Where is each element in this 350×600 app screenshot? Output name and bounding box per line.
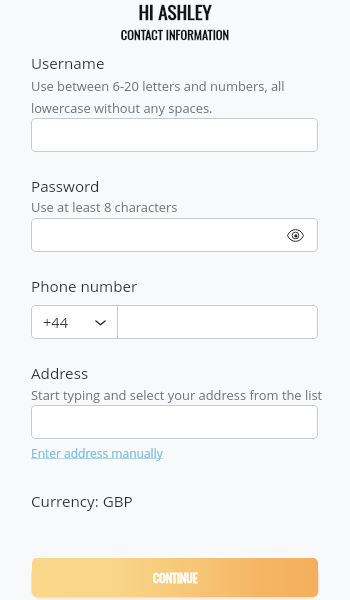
staticText: Start typing and select your address fro… (31, 386, 323, 404)
staticText: HI ASHLEY (0, 0, 350, 25)
staticText: CONTACT INFORMATION (0, 25, 350, 44)
button[interactable] (118, 305, 318, 339)
staticText: Phone number (31, 276, 138, 297)
staticText: Use at least 8 characters (31, 198, 178, 216)
button[interactable]: CONTINUE (32, 558, 318, 597)
staticText: Address (31, 363, 89, 384)
button[interactable] (31, 405, 318, 439)
staticText: Use between 6-20 letters and numbers, al… (31, 77, 318, 117)
button[interactable]: +44 (31, 305, 117, 339)
button[interactable]: Show password (284, 224, 306, 246)
button[interactable] (31, 118, 318, 152)
staticText: Username (31, 53, 105, 74)
staticText: Currency: GBP (31, 491, 133, 512)
staticText: +44 (43, 312, 69, 332)
button[interactable]: Enter address manually (31, 445, 163, 461)
button[interactable]: Show password (31, 218, 318, 252)
staticText: CONTINUE (153, 569, 198, 586)
staticText: Password (31, 176, 100, 197)
